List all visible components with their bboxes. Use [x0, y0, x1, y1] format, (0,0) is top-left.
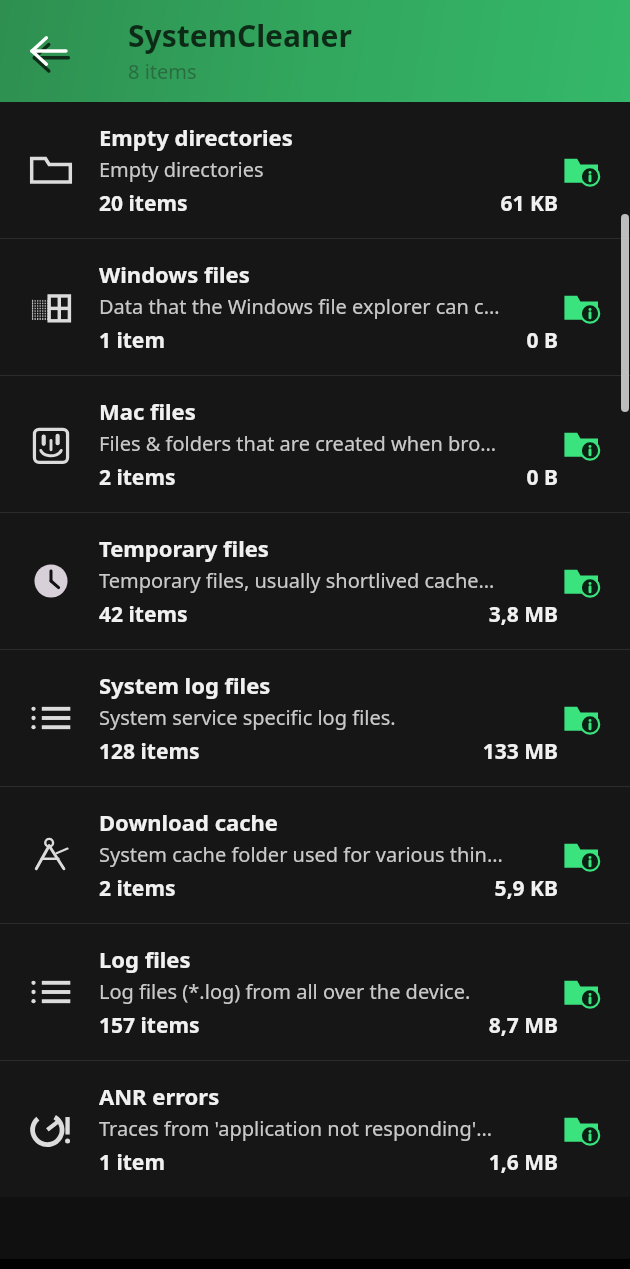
button[interactable]: Back — [14, 17, 82, 85]
staticText: 5,9 KB — [494, 874, 558, 903]
staticText: System cache folder used for various thi… — [99, 841, 503, 868]
staticText: System service specific log files. — [99, 704, 396, 731]
staticText: 2 items — [99, 874, 176, 903]
staticText: 1,6 MB — [488, 1148, 558, 1177]
staticText: 61 KB — [500, 189, 558, 218]
staticText: Data that the Windows file explorer can … — [99, 293, 500, 320]
staticText: 8 items — [128, 58, 197, 85]
staticText: Windows files — [99, 259, 250, 289]
button[interactable]: Details — [554, 1101, 610, 1157]
staticText: Files & folders that are created when br… — [99, 430, 497, 457]
staticText: 157 items — [99, 1011, 200, 1040]
staticText: Traces from 'application not responding'… — [99, 1115, 493, 1142]
staticText: 1 item — [99, 1148, 165, 1177]
staticText: Download cache — [99, 807, 278, 837]
staticText: Log files (*.log) from all over the devi… — [99, 978, 471, 1005]
staticText: 0 B — [526, 326, 558, 355]
staticText: Empty directories — [99, 122, 293, 152]
button[interactable]: Log files — [0, 924, 630, 1060]
button[interactable]: Details — [554, 279, 610, 335]
button[interactable]: Details — [554, 690, 610, 746]
button[interactable]: Windows files — [0, 239, 630, 375]
staticText: 0 B — [526, 463, 558, 492]
button[interactable]: Download cache — [0, 787, 630, 923]
staticText: 20 items — [99, 189, 188, 218]
staticText: 2 items — [99, 463, 176, 492]
staticText: 128 items — [99, 737, 200, 766]
staticText: Temporary files — [99, 533, 269, 563]
staticText: 42 items — [99, 600, 188, 629]
staticText: Mac files — [99, 396, 196, 426]
button[interactable]: System log files — [0, 650, 630, 786]
staticText: SystemCleaner — [128, 15, 352, 56]
button[interactable]: Mac files — [0, 376, 630, 512]
button[interactable]: Empty directories — [0, 102, 630, 238]
staticText: 3,8 MB — [488, 600, 558, 629]
staticText: Empty directories — [99, 156, 264, 183]
staticText: ANR errors — [99, 1081, 220, 1111]
button[interactable]: Details — [554, 553, 610, 609]
button[interactable]: Details — [554, 964, 610, 1020]
staticText: Temporary files, usually shortlived cach… — [99, 567, 495, 594]
staticText: Log files — [99, 944, 191, 974]
button[interactable]: Details — [554, 142, 610, 198]
button[interactable]: Temporary files — [0, 513, 630, 649]
staticText: System log files — [99, 670, 271, 700]
button[interactable]: Details — [554, 827, 610, 883]
button[interactable]: Details — [554, 416, 610, 472]
button[interactable]: ANR errors — [0, 1061, 630, 1197]
staticText: 133 MB — [482, 737, 558, 766]
staticText: 1 item — [99, 326, 165, 355]
staticText: 8,7 MB — [488, 1011, 558, 1040]
